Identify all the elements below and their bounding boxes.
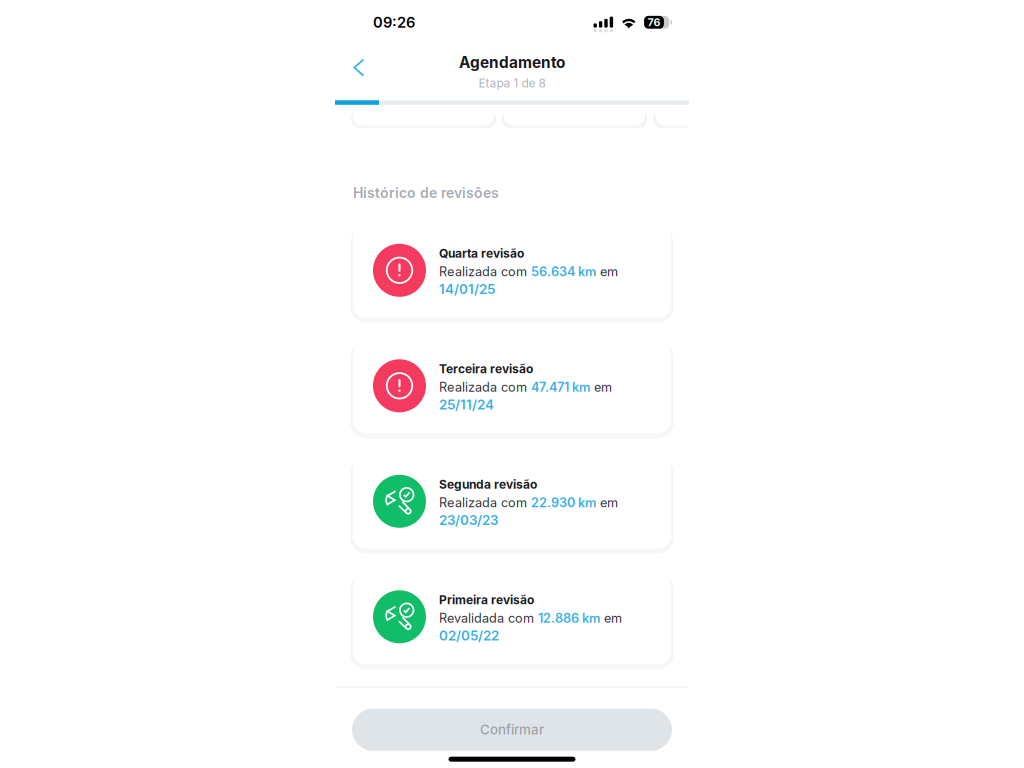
- staticText: Confirmar: [480, 722, 544, 738]
- staticText: 76: [647, 16, 660, 29]
- staticText: 22.930 km: [531, 495, 596, 510]
- staticText: 25/11/24: [439, 396, 494, 413]
- staticText: Terceira revisão: [439, 361, 533, 376]
- staticText: em: [600, 610, 622, 626]
- staticText: Histórico de revisões: [353, 184, 499, 201]
- button[interactable]: Terceira revisão: [353, 336, 671, 433]
- staticText: Realizada com: [439, 495, 531, 510]
- staticText: Primeira revisão: [439, 592, 534, 607]
- staticText: 56.634 km: [531, 264, 596, 279]
- staticText: 23/03/23: [439, 512, 498, 528]
- staticText: em: [596, 495, 618, 510]
- staticText: em: [596, 264, 618, 279]
- staticText: Revalidada com: [439, 610, 538, 626]
- button[interactable]: Quarta revisão: [353, 221, 671, 318]
- staticText: Etapa 1 de 8: [478, 76, 545, 90]
- staticText: 02/05/22: [439, 627, 499, 644]
- button[interactable]: Segunda revisão: [353, 452, 671, 549]
- button[interactable]: Primeira revisão: [353, 567, 671, 664]
- staticText: Realizada com: [439, 379, 531, 395]
- staticText: em: [590, 379, 612, 395]
- staticText: 09:26: [373, 13, 415, 31]
- staticText: Realizada com: [439, 264, 531, 279]
- staticText: 47.471 km: [531, 379, 590, 395]
- button[interactable]: Confirmar: [352, 709, 672, 751]
- staticText: Agendamento: [459, 53, 565, 72]
- staticText: Quarta revisão: [439, 246, 524, 260]
- staticText: 12.886 km: [538, 610, 600, 626]
- staticText: 14/01/25: [439, 281, 495, 297]
- button[interactable]: Voltar: [342, 51, 380, 93]
- staticText: Segunda revisão: [439, 477, 537, 491]
